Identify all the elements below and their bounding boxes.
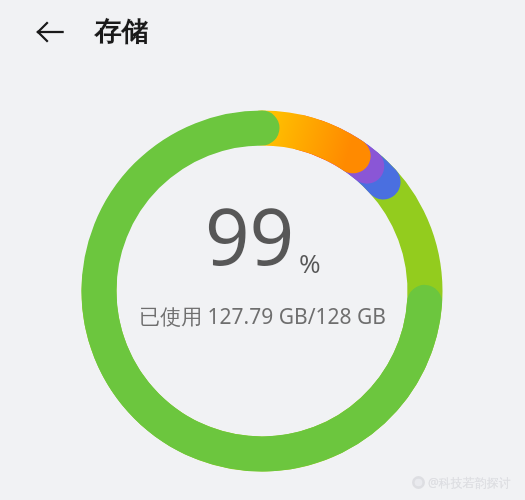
staticText: % bbox=[299, 245, 321, 280]
staticText: 存储 bbox=[94, 15, 148, 49]
staticText: @科技若韵探讨 bbox=[428, 474, 511, 490]
staticText: 已使用 127.79 GB/128 GB bbox=[139, 302, 386, 331]
button[interactable]: Back bbox=[26, 8, 74, 56]
staticText: 99 bbox=[205, 182, 295, 288]
